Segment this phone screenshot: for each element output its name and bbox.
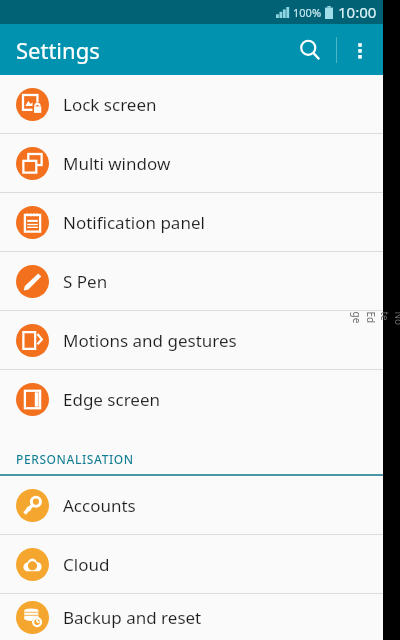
button[interactable]: Lock screen [0,75,383,133]
staticText: S Pen [63,270,108,293]
button[interactable]: Motions and gestures [0,311,383,369]
button[interactable]: Search [284,24,336,75]
button[interactable]: S Pen [0,252,383,310]
button[interactable]: Backup and reset [0,594,383,640]
staticText: Edge screen [63,388,161,411]
staticText: Notification panel [63,211,205,234]
staticText: 100% [293,5,322,20]
staticText: Cloud [63,553,110,576]
staticText: Galaxy Note Edge [349,311,400,328]
button[interactable]: Notification panel [0,193,383,251]
staticText: Backup and reset [63,606,202,629]
staticText: Multi window [63,152,171,175]
staticText: Motions and gestures [63,329,237,352]
button[interactable]: More options [337,27,383,73]
staticText: PERSONALISATION [16,451,134,467]
staticText: Accounts [63,494,136,517]
button[interactable]: Cloud [0,535,383,593]
button[interactable]: Edge screen [0,370,383,428]
staticText: Lock screen [63,93,157,116]
staticText: 10:00 [338,2,377,22]
button[interactable]: Multi window [0,134,383,192]
button[interactable]: Accounts [0,476,383,534]
staticText: Settings [16,35,100,65]
